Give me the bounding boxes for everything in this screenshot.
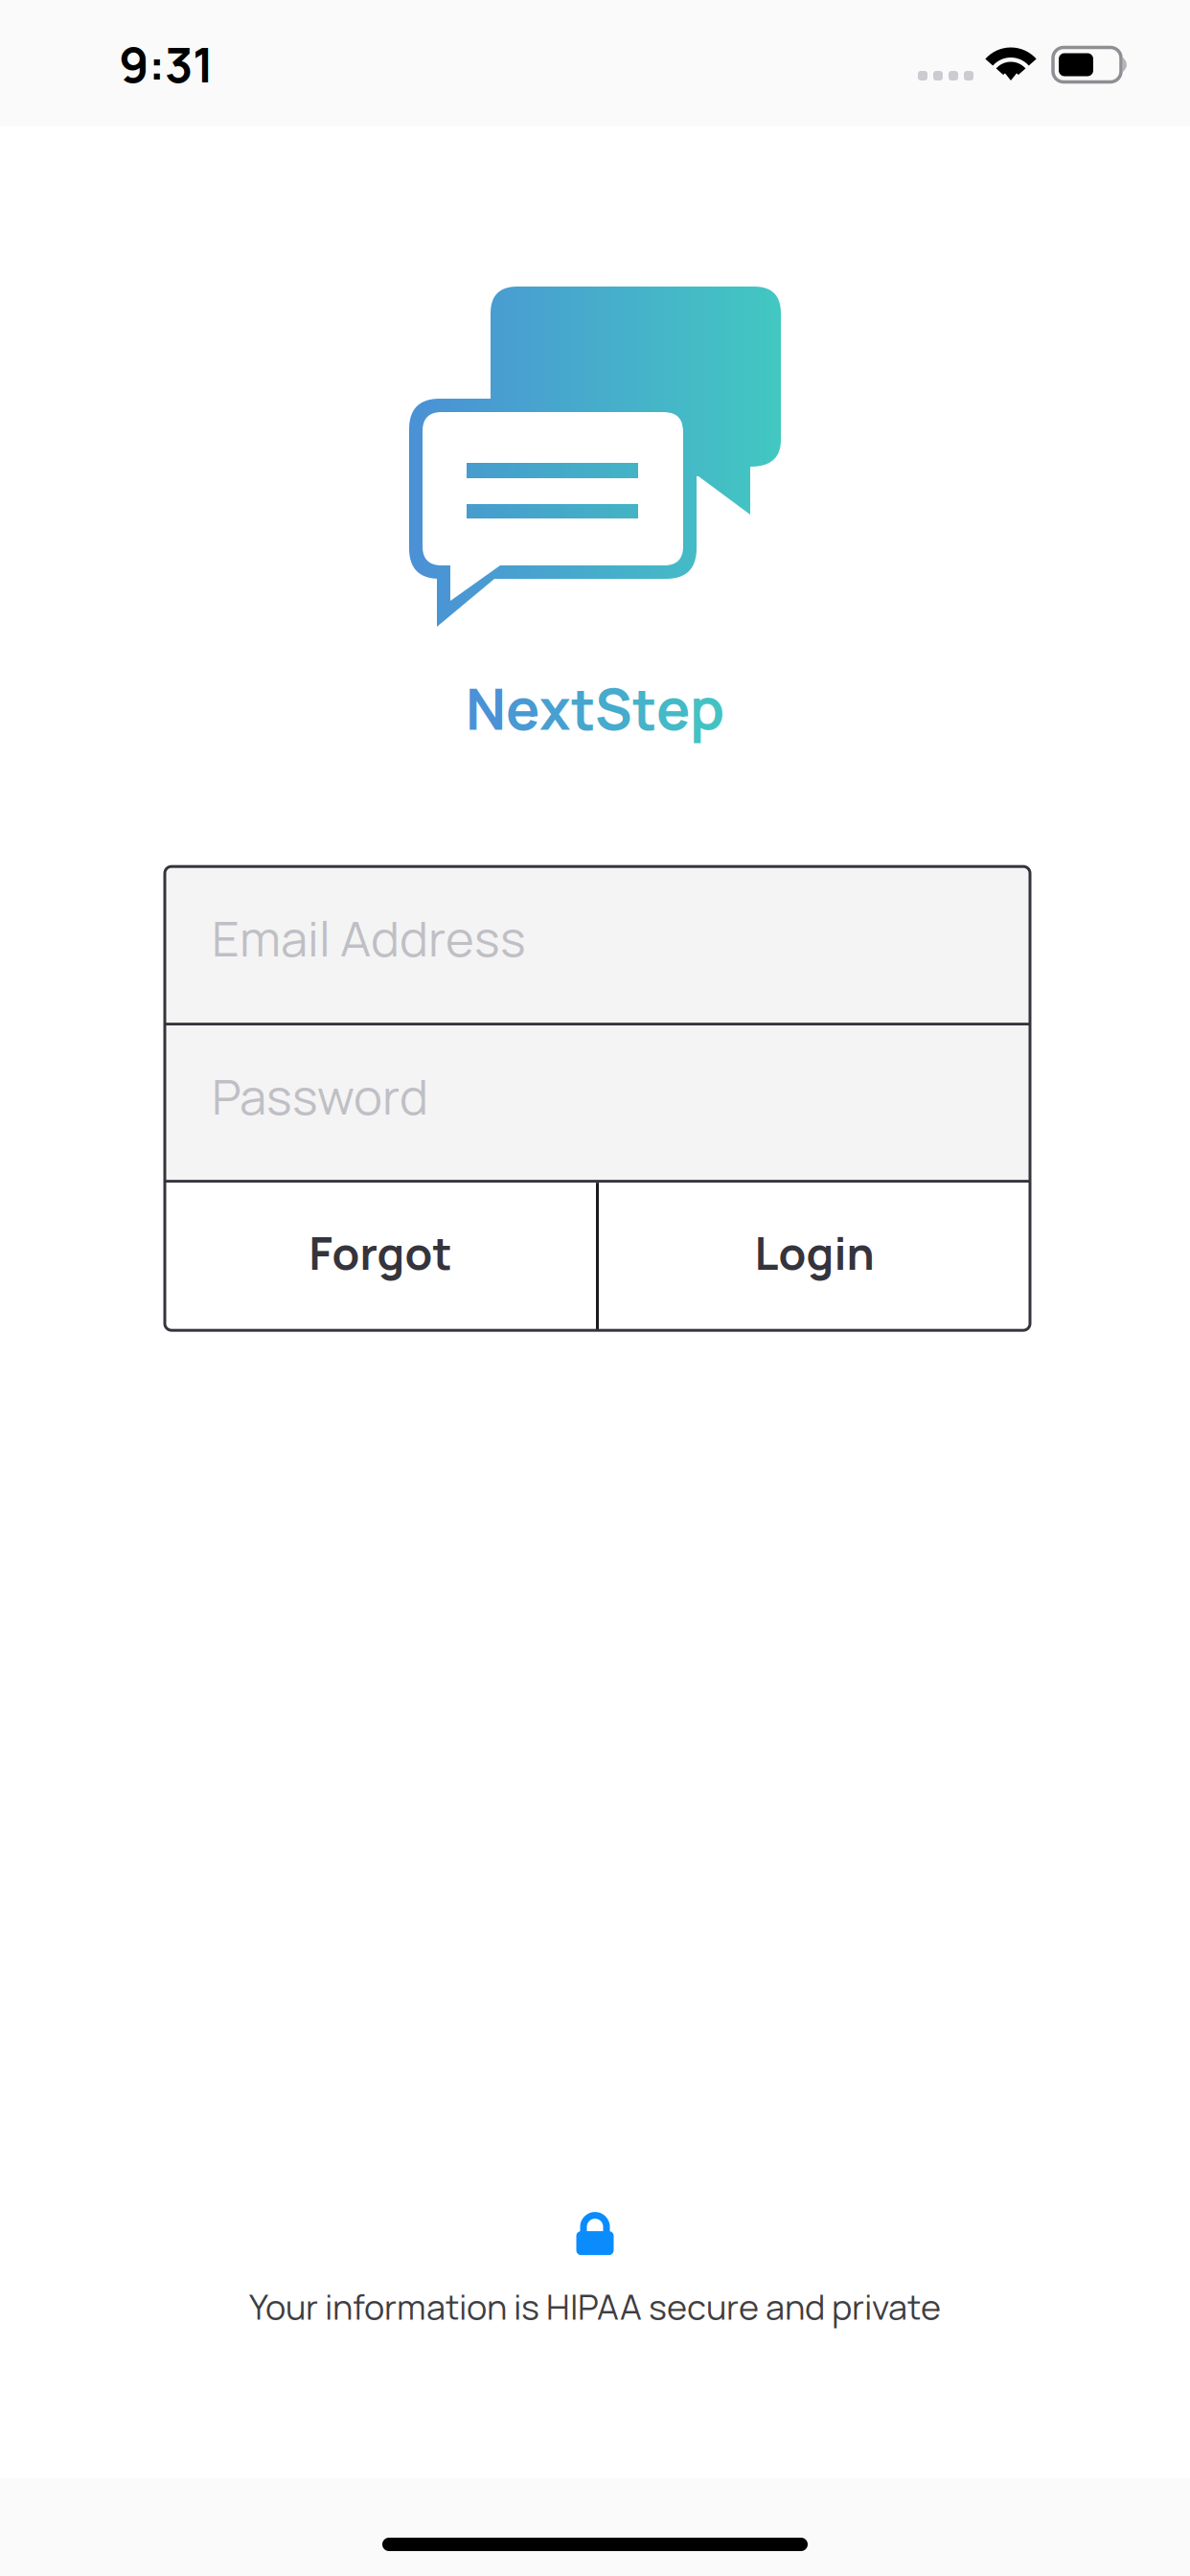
staticText: p: [690, 670, 724, 747]
staticText: Forgot: [309, 1222, 452, 1283]
staticText: x: [539, 670, 571, 747]
staticText: Your information is HIPAA secure and pri…: [249, 2283, 941, 2330]
staticText: 9:31: [119, 31, 214, 97]
button[interactable]: Password: [165, 1026, 1030, 1180]
staticText: S: [595, 670, 632, 747]
button[interactable]: Email Address: [165, 866, 1030, 1023]
button[interactable]: Login: [599, 1183, 1030, 1330]
staticText: e: [506, 670, 539, 747]
staticText: Login: [755, 1222, 874, 1283]
staticText: t: [571, 670, 595, 747]
staticText: e: [656, 670, 690, 747]
staticText: Email Address: [212, 905, 526, 971]
staticText: Password: [212, 1063, 428, 1129]
button[interactable]: Forgot: [165, 1183, 596, 1330]
staticText: t: [632, 670, 656, 747]
staticText: N: [466, 670, 506, 747]
